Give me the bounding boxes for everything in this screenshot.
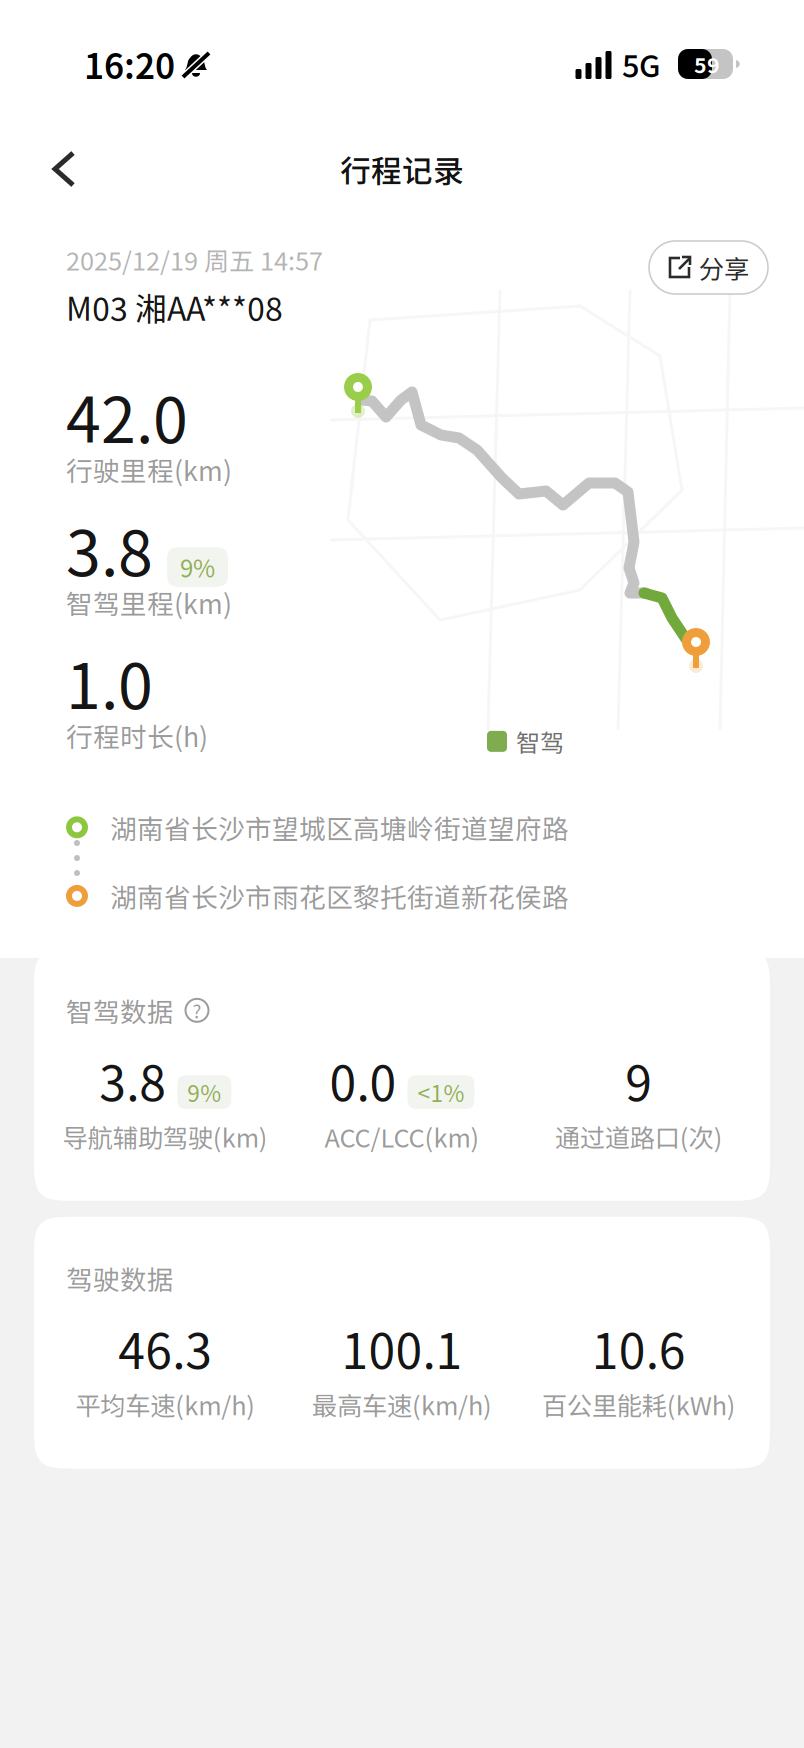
staticText: 导航辅助驾驶(km) [63, 1118, 268, 1155]
staticText: M03 湘AA***08 [66, 284, 283, 330]
staticText: 行驶里程(km) [66, 450, 232, 489]
staticText: 9% [187, 1076, 221, 1108]
staticText: ? [192, 997, 201, 1024]
staticText: 100.1 [341, 1313, 462, 1383]
staticText: 行程记录 [340, 147, 464, 191]
staticText: 0.0 [329, 1046, 396, 1115]
staticText: 2025/12/19 周五 14:57 [66, 241, 323, 278]
staticText: 5G [622, 42, 660, 86]
staticText: 驾驶数据 [66, 1259, 174, 1297]
staticText: 行程时长(h) [66, 716, 208, 755]
staticText: 分享 [699, 249, 749, 286]
staticText: 42.0 [66, 370, 188, 461]
staticText: 59 [694, 49, 720, 79]
staticText: 百公里能耗(kWh) [542, 1386, 736, 1423]
staticText: 通过道路口(次) [555, 1118, 723, 1155]
staticText: <1% [417, 1076, 464, 1108]
staticText: ACC/LCC(km) [324, 1118, 479, 1155]
staticText: 3.8 [99, 1046, 166, 1115]
staticText: 最高车速(km/h) [312, 1386, 492, 1423]
staticText: 9 [625, 1046, 652, 1115]
staticText: 湖南省长沙市雨花区黎托街道新花侯路 [110, 877, 569, 915]
staticText: 智驾 [516, 724, 564, 759]
staticText: 46.3 [118, 1313, 212, 1383]
staticText: 10.6 [592, 1313, 686, 1383]
staticText: 3.8 [66, 503, 153, 594]
button[interactable]: 分享 [649, 241, 768, 294]
staticText: 9% [180, 550, 215, 584]
staticText: 16:20 [84, 39, 175, 89]
staticText: 智驾数据 [66, 991, 174, 1030]
staticText: 1.0 [66, 636, 153, 727]
staticText: 平均车速(km/h) [75, 1386, 255, 1423]
staticText: 智驾里程(km) [66, 583, 232, 622]
button[interactable]: Back [0, 129, 100, 209]
staticText: 湖南省长沙市望城区高塘岭街道望府路 [110, 808, 569, 847]
